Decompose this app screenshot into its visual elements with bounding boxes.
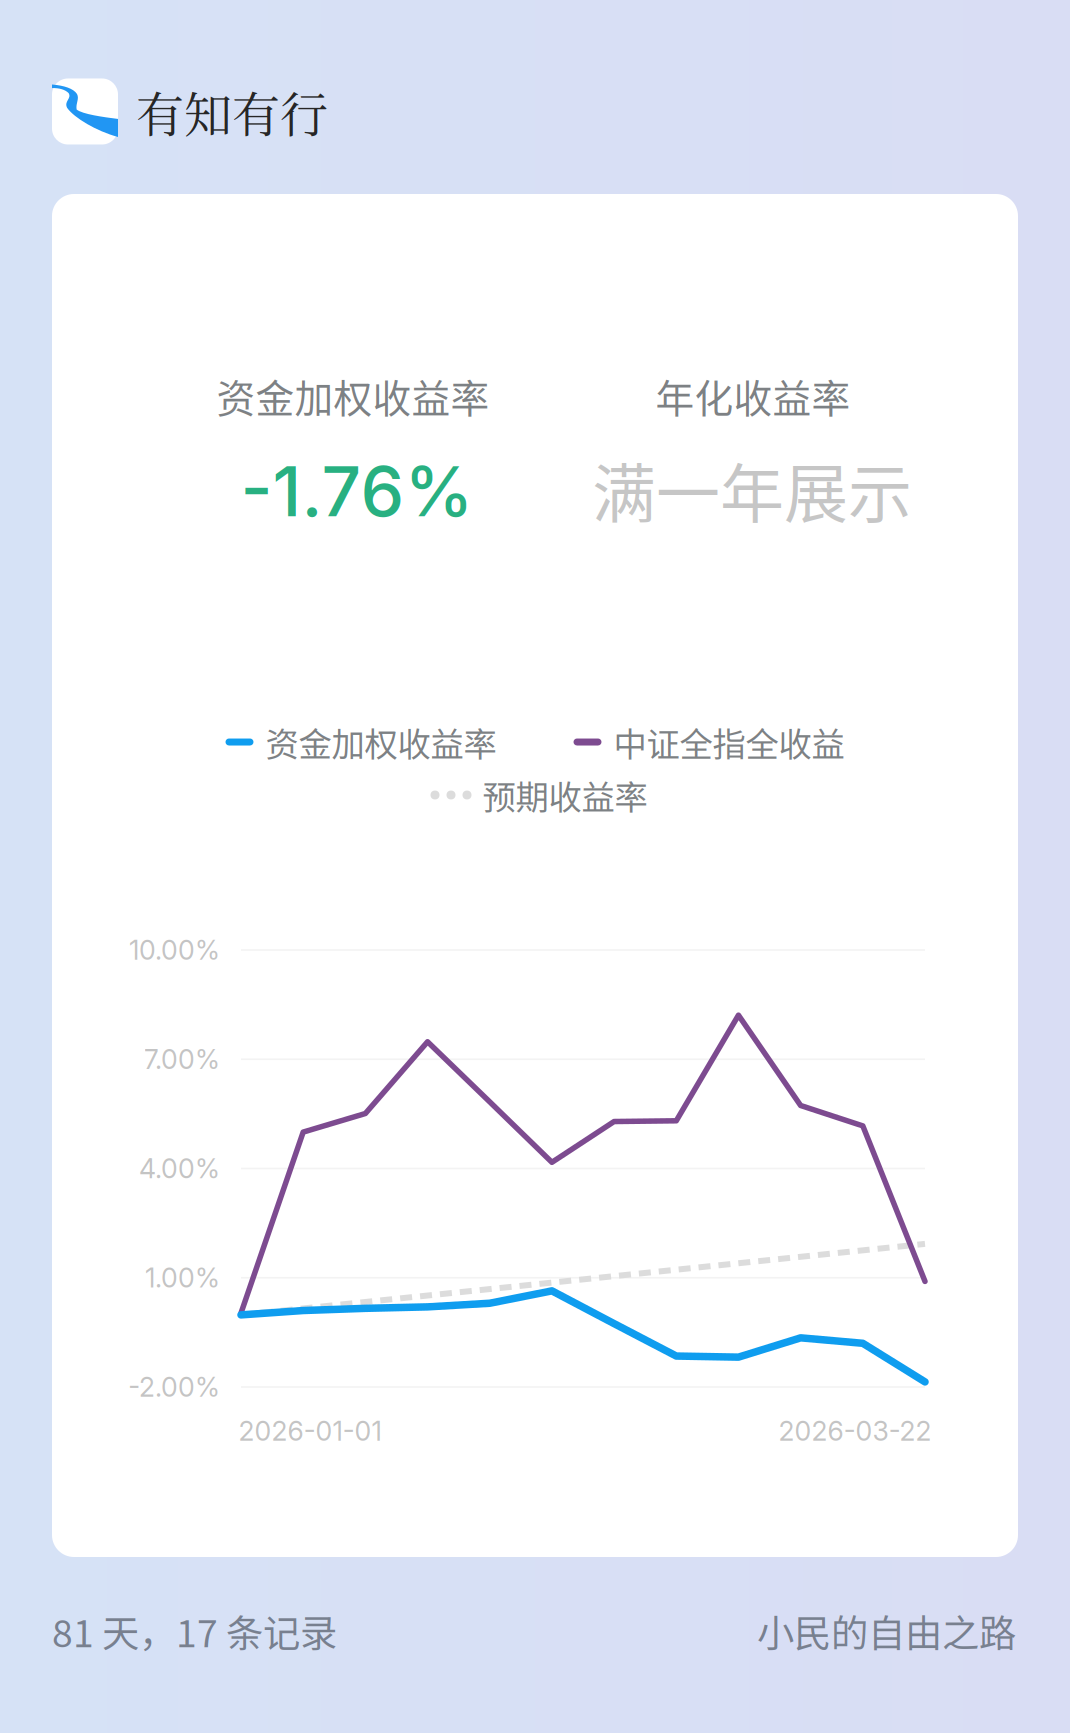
staticText: 2026-01-01 [238,1415,381,1447]
staticText: 预期收益率 [482,771,647,819]
staticText: 资金加权收益率 [216,368,489,424]
staticText: 2026-03-22 [778,1415,931,1447]
staticText: 中证全指全收益 [613,718,844,766]
staticText: 小民的自由之路 [757,1604,1016,1658]
staticText: 81 天，17 条记录 [52,1604,337,1658]
button[interactable]: 有知有行 [52,77,328,146]
staticText: 年化收益率 [655,368,850,424]
staticText: -1.76% [240,449,473,533]
staticText: 满一年展示 [592,443,912,535]
staticText: -2.00% [128,1371,220,1403]
staticText: 7.00% [144,1043,220,1075]
staticText: 1.00% [145,1262,220,1294]
staticText: 有知有行 [136,77,328,146]
staticText: 10.00% [129,934,220,966]
staticText: 4.00% [139,1152,220,1185]
staticText: 资金加权收益率 [265,718,496,766]
